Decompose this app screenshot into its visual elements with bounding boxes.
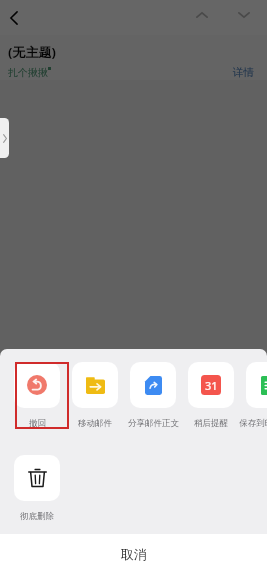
staticText: 稍后提醒 — [194, 418, 228, 429]
staticText: (无主题) — [8, 43, 56, 61]
staticText: 分享邮件正文 — [128, 418, 179, 429]
staticText: 撤回 — [29, 418, 46, 429]
button[interactable] — [246, 362, 267, 408]
button[interactable]: Next message — [238, 9, 250, 20]
button[interactable] — [130, 362, 176, 408]
button[interactable]: Open sidebar — [0, 118, 9, 158]
staticText: 移动邮件 — [78, 418, 112, 429]
button[interactable] — [14, 455, 60, 501]
button[interactable]: 取消 — [0, 534, 267, 568]
staticText: 扎个揪揪 — [8, 66, 48, 79]
staticText: 保存到印象笔记 — [239, 418, 267, 429]
button[interactable]: 详情 — [233, 66, 254, 79]
button[interactable]: Previous message — [196, 9, 208, 20]
button[interactable]: 31 — [188, 362, 234, 408]
button[interactable] — [14, 362, 60, 408]
staticText: 彻底删除 — [20, 511, 54, 522]
staticText: 31 — [205, 378, 218, 393]
button[interactable] — [72, 362, 118, 408]
button[interactable]: Back — [1, 5, 27, 31]
staticText: 取消 — [121, 546, 147, 562]
